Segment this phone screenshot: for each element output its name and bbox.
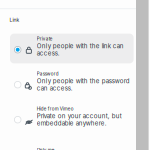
staticText: Only people with the password (37, 77, 130, 85)
button[interactable]: Private (10, 34, 134, 63)
button[interactable]: Password (10, 69, 134, 98)
staticText: access. (37, 49, 60, 57)
staticText: Only me (37, 147, 55, 150)
staticText: Only people with the link can (37, 42, 124, 50)
button[interactable]: Only me (10, 145, 134, 150)
staticText: Link (9, 17, 19, 23)
staticText: embeddable anywhere. (37, 119, 107, 127)
button[interactable]: Hide from Vimeo (10, 104, 134, 133)
staticText: Private on your account, but (37, 112, 122, 120)
staticText: Password (37, 71, 59, 76)
staticText: can access. (37, 84, 73, 92)
staticText: Private (37, 36, 53, 41)
staticText: Hide from Vimeo (37, 106, 74, 111)
